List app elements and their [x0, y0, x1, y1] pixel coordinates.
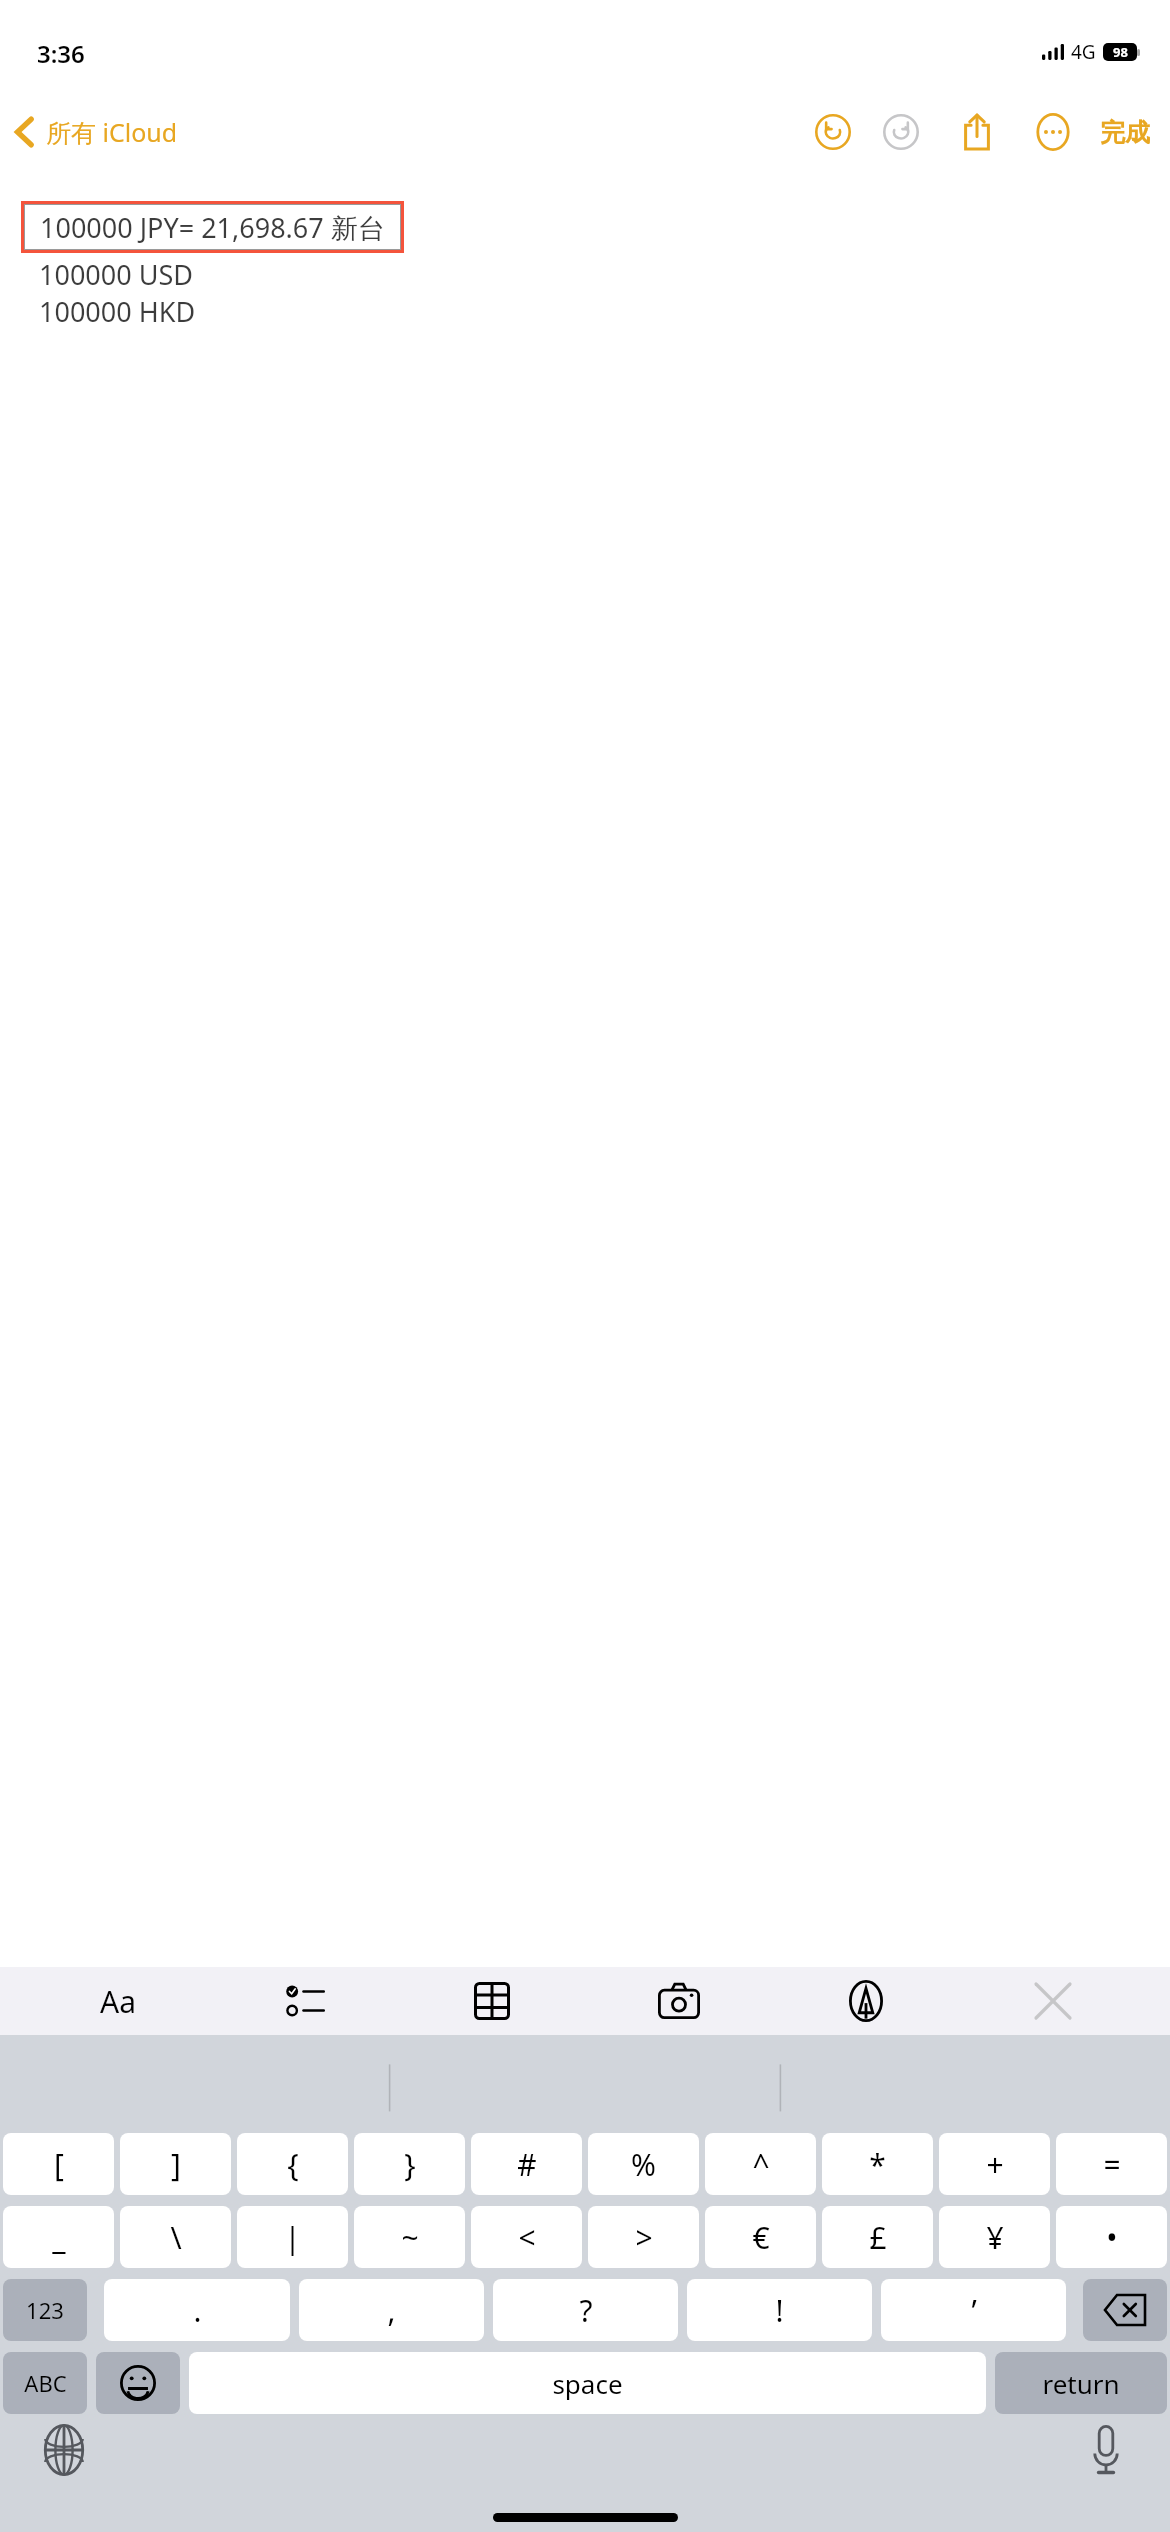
staticText: 100000 JPY= 21,698.67 新台幣	[40, 209, 400, 246]
staticText: ^	[752, 2144, 770, 2185]
button[interactable]: Undo	[804, 103, 862, 161]
button[interactable]: Change keyboard	[34, 2420, 94, 2480]
staticText: %	[631, 2144, 656, 2185]
button[interactable]: More options	[1024, 103, 1082, 161]
button[interactable]: _	[3, 2206, 114, 2268]
staticText: 3:36	[37, 37, 85, 70]
staticText: =	[1103, 2144, 1121, 2185]
button[interactable]: #	[471, 2133, 582, 2195]
staticText: 4G	[1071, 39, 1096, 65]
staticText: •	[1106, 2217, 1118, 2258]
staticText: #	[517, 2144, 537, 2185]
button[interactable]: ABC	[3, 2352, 87, 2414]
button[interactable]: ~	[354, 2206, 465, 2268]
button[interactable]: Emoji	[96, 2352, 180, 2414]
button[interactable]: |	[237, 2206, 348, 2268]
button[interactable]: Redo	[872, 103, 930, 161]
staticText: {	[287, 2144, 299, 2185]
staticText: _	[52, 2217, 66, 2258]
button[interactable]: %	[588, 2133, 699, 2195]
button[interactable]: Backspace	[1083, 2279, 1167, 2341]
staticText: 100000 USD	[39, 256, 193, 293]
staticText: ~	[401, 2217, 419, 2258]
staticText: }	[404, 2144, 416, 2185]
staticText: return	[1042, 2366, 1120, 2401]
button[interactable]: Camera	[585, 1967, 772, 2035]
staticText: 98	[1113, 43, 1128, 61]
button[interactable]: ¥	[939, 2206, 1050, 2268]
button[interactable]: Markup	[772, 1967, 959, 2035]
button[interactable]: ^	[705, 2133, 816, 2195]
button[interactable]: 所有 iCloud	[14, 115, 178, 149]
button[interactable]: \	[120, 2206, 231, 2268]
staticText: 100000 HKD	[39, 293, 196, 330]
staticText: .	[193, 2290, 202, 2331]
staticText: *	[869, 2144, 886, 2185]
button[interactable]: £	[822, 2206, 933, 2268]
staticText: ,	[387, 2290, 396, 2331]
button[interactable]: {	[237, 2133, 348, 2195]
staticText: ]	[171, 2144, 181, 2185]
staticText: ?	[579, 2290, 593, 2331]
button[interactable]: *	[822, 2133, 933, 2195]
button[interactable]: .	[104, 2279, 290, 2341]
staticText: Aa	[100, 1981, 136, 2022]
button[interactable]: space	[189, 2352, 986, 2414]
button[interactable]: 123	[3, 2279, 87, 2341]
staticText: £	[869, 2217, 887, 2258]
button[interactable]: •	[1056, 2206, 1167, 2268]
staticText: ’	[971, 2290, 977, 2331]
button[interactable]: Close keyboard	[959, 1967, 1146, 2035]
button[interactable]: Checklist	[211, 1967, 398, 2035]
button[interactable]: =	[1056, 2133, 1167, 2195]
button[interactable]: 100000 JPY= 21,698.67 新台幣	[25, 205, 400, 249]
staticText: 完成	[1100, 117, 1150, 148]
button[interactable]: ?	[493, 2279, 678, 2341]
staticText: +	[986, 2144, 1004, 2185]
button[interactable]: ,	[299, 2279, 484, 2341]
button[interactable]: Dictation	[1076, 2420, 1136, 2480]
staticText: |	[284, 2217, 301, 2258]
staticText: space	[552, 2366, 623, 2401]
staticText: €	[752, 2217, 770, 2258]
button[interactable]: Share	[948, 103, 1006, 161]
button[interactable]: !	[687, 2279, 872, 2341]
staticText: !	[775, 2290, 784, 2331]
staticText: 所有 iCloud	[46, 115, 178, 149]
button[interactable]: <	[471, 2206, 582, 2268]
button[interactable]: ]	[120, 2133, 231, 2195]
button[interactable]: }	[354, 2133, 465, 2195]
button[interactable]: >	[588, 2206, 699, 2268]
button[interactable]: 完成	[1096, 117, 1154, 148]
button[interactable]: return	[995, 2352, 1167, 2414]
staticText: <	[518, 2217, 536, 2258]
button[interactable]: €	[705, 2206, 816, 2268]
button[interactable]: +	[939, 2133, 1050, 2195]
button[interactable]: Text format	[24, 1967, 211, 2035]
button[interactable]: [	[3, 2133, 114, 2195]
staticText: >	[635, 2217, 653, 2258]
button[interactable]: ’	[881, 2279, 1066, 2341]
staticText: ¥	[986, 2217, 1004, 2258]
staticText: [	[54, 2144, 64, 2185]
staticText: ABC	[24, 2368, 67, 2398]
staticText: \	[170, 2217, 182, 2258]
button[interactable]: Table	[398, 1967, 585, 2035]
staticText: 123	[26, 2295, 64, 2325]
